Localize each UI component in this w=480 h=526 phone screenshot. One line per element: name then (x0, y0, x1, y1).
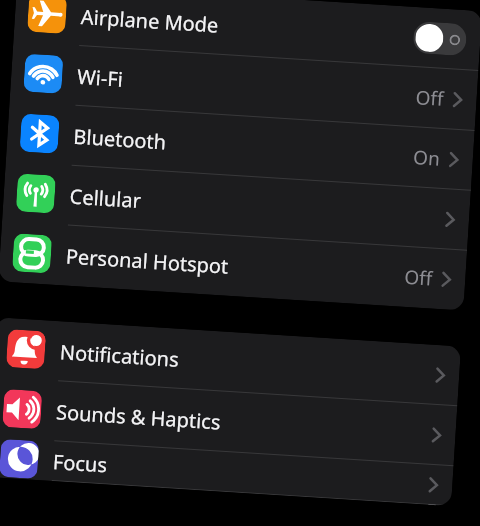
staticText: Off (403, 264, 433, 291)
staticText: Focus (52, 448, 429, 499)
staticText: Sounds & Haptics (55, 398, 432, 449)
button[interactable]: Focus (0, 437, 453, 506)
button[interactable]: Airplane Mode toggle, off (412, 21, 467, 56)
staticText: Notifications (59, 338, 436, 389)
staticText: Personal Hotspot (65, 242, 405, 291)
staticText: Off (415, 84, 444, 112)
button[interactable]: Personal Hotspot (0, 221, 467, 310)
button[interactable]: Wi-Fi (10, 42, 478, 131)
button[interactable]: Sounds & Haptics (0, 377, 457, 466)
button[interactable]: Notifications (0, 317, 461, 406)
button[interactable]: Bluetooth (6, 102, 475, 191)
staticText: Cellular (69, 183, 446, 233)
staticText: Wi-Fi (76, 63, 416, 111)
button[interactable]: Cellular (2, 161, 471, 251)
staticText: Bluetooth (73, 123, 414, 171)
staticText: On (412, 144, 441, 172)
staticText: Airplane Mode (80, 3, 414, 51)
button[interactable]: Airplane Mode (13, 0, 480, 71)
